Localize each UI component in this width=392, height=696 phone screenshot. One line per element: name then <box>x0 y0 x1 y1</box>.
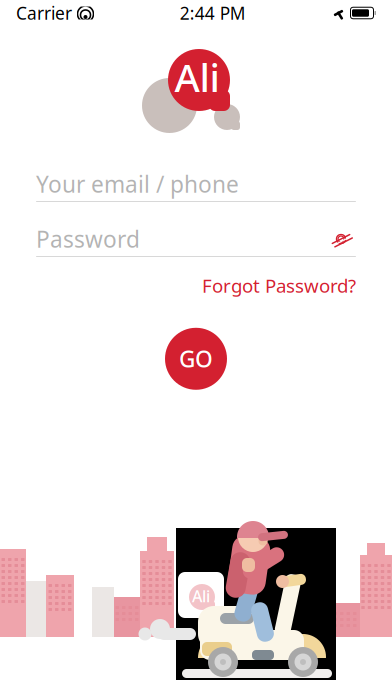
staticText: Carrier <box>16 1 72 24</box>
staticText: GO <box>179 344 213 374</box>
staticText: 2:44 PM <box>180 1 246 24</box>
staticText: Your email / phone <box>36 169 239 199</box>
button[interactable]: GO <box>165 328 227 390</box>
staticText: Ali <box>192 585 210 607</box>
staticText: Forgot Password? <box>202 273 356 298</box>
staticText: Ali <box>174 51 219 103</box>
button[interactable]: Show password <box>326 227 356 251</box>
staticText: Password <box>36 224 140 254</box>
button[interactable]: Forgot Password? <box>202 267 356 304</box>
